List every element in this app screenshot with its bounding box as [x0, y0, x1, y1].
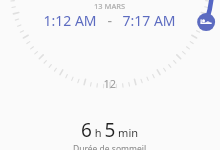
button[interactable]: Sleep schedule dial — [0, 0, 220, 150]
